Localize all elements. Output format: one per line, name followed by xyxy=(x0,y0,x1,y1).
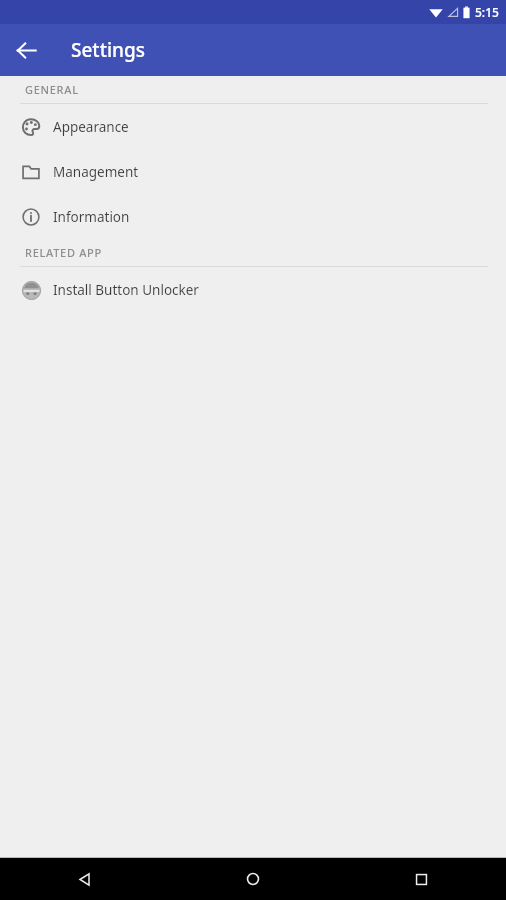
staticText: RELATED APP xyxy=(25,245,102,260)
staticText: Settings xyxy=(71,37,145,63)
staticText: Install Button Unlocker xyxy=(53,281,199,299)
button[interactable]: Management xyxy=(0,149,506,194)
button[interactable]: Appearance xyxy=(0,104,506,149)
button[interactable]: Information xyxy=(0,194,506,239)
button[interactable]: Back xyxy=(0,858,168,900)
staticText: GENERAL xyxy=(25,82,79,97)
staticText: 5:15 xyxy=(475,4,499,20)
button[interactable]: Navigate up xyxy=(6,30,46,70)
staticText: Management xyxy=(53,163,139,181)
button[interactable]: Install Button Unlocker xyxy=(0,267,506,312)
button[interactable]: Home xyxy=(168,858,337,900)
staticText: Information xyxy=(53,208,130,226)
button[interactable]: Recent apps xyxy=(337,858,506,900)
staticText: Appearance xyxy=(53,118,129,136)
